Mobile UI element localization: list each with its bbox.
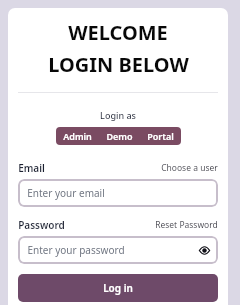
button[interactable]: Show password <box>196 242 212 258</box>
staticText: Admin <box>63 130 92 142</box>
staticText: Reset Password <box>155 219 218 231</box>
staticText: Login as <box>100 109 136 121</box>
button[interactable]: Enter your password <box>18 236 218 264</box>
staticText: Demo <box>106 130 133 142</box>
staticText: Portal <box>147 130 174 142</box>
staticText: LOGIN BELOW <box>48 51 189 78</box>
staticText: Email <box>18 161 45 175</box>
button[interactable]: Log in <box>18 274 218 302</box>
staticText: Enter your email <box>27 186 105 200</box>
staticText: WELCOME <box>68 19 168 46</box>
button[interactable]: Admin <box>56 127 99 145</box>
staticText: Enter your password <box>27 243 125 257</box>
button[interactable]: Choose a user <box>161 162 218 174</box>
staticText: Password <box>18 218 65 232</box>
staticText: Choose a user <box>161 162 218 174</box>
button[interactable]: Reset Password <box>155 219 218 231</box>
button[interactable]: Enter your email <box>18 179 218 207</box>
staticText: Log in <box>103 281 133 295</box>
button[interactable]: Portal <box>140 127 181 145</box>
button[interactable]: Demo <box>99 127 140 145</box>
